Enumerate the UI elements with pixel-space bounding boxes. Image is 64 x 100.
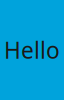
staticText: Hello	[4, 35, 60, 65]
